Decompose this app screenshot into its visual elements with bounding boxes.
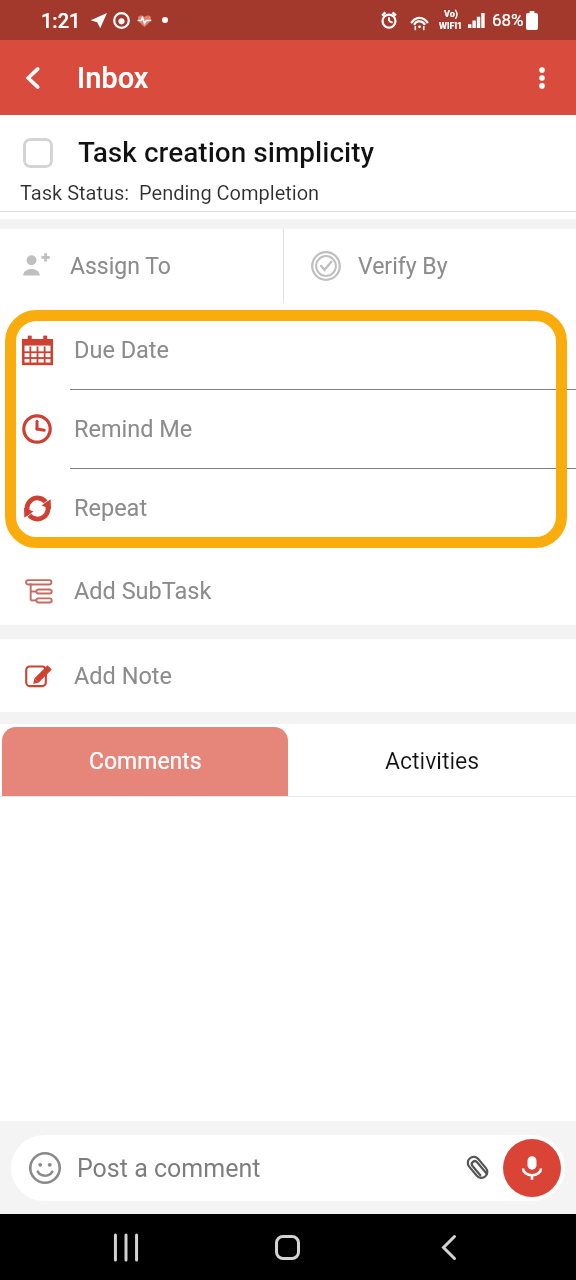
staticText: Activities [385,748,480,775]
button[interactable]: Mark complete [23,138,53,168]
staticText: Comments [89,748,202,775]
button[interactable]: Add Note [0,639,576,712]
button[interactable]: Repeat [0,468,576,547]
staticText: Post a comment [77,1154,261,1183]
staticText: Remind Me [74,415,193,443]
button[interactable]: Back [392,1214,506,1280]
staticText: 1:21 [41,9,81,32]
staticText: WIFI1 [439,21,463,32]
button[interactable]: Assign To [0,229,283,303]
staticText: 68% [492,10,524,30]
staticText: Due Date [74,336,170,364]
staticText: Add Note [74,662,172,690]
staticText: Add SubTask [74,577,212,605]
button[interactable]: Home [182,1214,392,1280]
button[interactable]: Due Date [0,310,576,389]
staticText: Task creation simplicity [78,136,375,169]
button[interactable]: Remind Me [0,389,576,468]
button[interactable]: Add SubTask [0,556,576,625]
staticText: Vo) [444,9,458,20]
button[interactable]: Verify By [284,229,576,303]
button[interactable]: Attach file [455,1145,501,1191]
button[interactable]: Back [0,40,66,115]
button[interactable]: Recents [70,1214,182,1280]
staticText: Inbox [77,61,149,95]
button[interactable]: Voice input [503,1139,561,1197]
button[interactable]: Comments [2,727,288,796]
button[interactable]: Activities [288,727,576,796]
staticText: Verify By [358,253,448,280]
staticText: Assign To [70,253,171,280]
staticText: Repeat [74,494,148,522]
staticText: Task Status: Pending Completion [20,181,320,204]
button[interactable]: More options [512,40,572,115]
